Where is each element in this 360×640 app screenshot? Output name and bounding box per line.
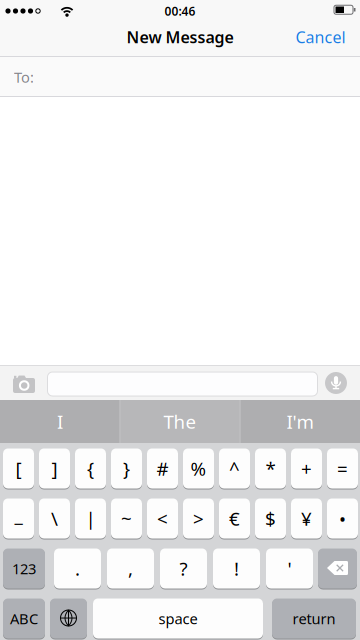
staticText: ABC — [10, 609, 38, 628]
staticText: The — [163, 409, 196, 434]
button[interactable]: _ — [3, 498, 34, 539]
staticText: 123 — [12, 559, 36, 578]
staticText: \ — [51, 506, 58, 531]
button[interactable]: < — [147, 498, 178, 539]
button[interactable]: | — [75, 498, 106, 539]
button[interactable]: return — [272, 598, 356, 639]
button[interactable]: , — [107, 548, 154, 589]
button[interactable]: + — [291, 448, 322, 489]
staticText: * — [265, 456, 275, 481]
button[interactable]: { — [75, 448, 106, 489]
button[interactable]: * — [255, 448, 286, 489]
staticText: . — [75, 556, 80, 581]
staticText: } — [123, 456, 130, 481]
button[interactable]: Delete — [318, 548, 357, 589]
button[interactable]: space — [93, 598, 263, 639]
button[interactable]: I — [5, 400, 115, 443]
staticText: % — [190, 456, 206, 481]
button[interactable]: The — [125, 400, 235, 443]
staticText: + — [301, 456, 312, 481]
staticText: > — [193, 506, 204, 531]
staticText: To: — [14, 67, 34, 87]
staticText: < — [157, 506, 168, 531]
staticText: _ — [14, 502, 22, 527]
button[interactable]: [ — [3, 448, 34, 489]
button[interactable]: $ — [255, 498, 286, 539]
staticText: • — [339, 506, 346, 531]
button[interactable]: 123 — [3, 548, 45, 589]
button[interactable]: Take Photo — [0, 365, 48, 400]
button[interactable]: ABC — [3, 598, 45, 639]
button[interactable]: # — [147, 448, 178, 489]
staticText: I'm — [286, 409, 313, 434]
staticText: ¥ — [301, 506, 312, 531]
button[interactable]: Cancel — [295, 26, 356, 48]
button[interactable]: • — [327, 498, 358, 539]
staticText: = — [337, 456, 348, 481]
staticText: 00:46 — [164, 3, 195, 19]
button[interactable]: To: — [0, 57, 360, 97]
staticText: ^ — [229, 456, 240, 481]
staticText: ! — [234, 556, 239, 581]
button[interactable]: ! — [213, 548, 260, 589]
staticText: [ — [15, 456, 21, 481]
button[interactable]: > — [183, 498, 214, 539]
button[interactable]: ? — [160, 548, 207, 589]
button[interactable]: \ — [39, 498, 70, 539]
button[interactable]: ¥ — [291, 498, 322, 539]
staticText: € — [229, 506, 240, 531]
staticText: | — [85, 506, 95, 531]
staticText: ' — [287, 556, 291, 581]
staticText: space — [158, 609, 197, 628]
staticText: return — [292, 609, 335, 628]
button[interactable]: ~ — [111, 498, 142, 539]
button[interactable]: % — [183, 448, 214, 489]
button[interactable]: € — [219, 498, 250, 539]
button[interactable]: ^ — [219, 448, 250, 489]
staticText: # — [156, 456, 168, 481]
button[interactable]: Message — [47, 372, 317, 396]
staticText: { — [87, 456, 94, 481]
button[interactable]: Record voice message — [325, 372, 347, 394]
button[interactable]: I'm — [245, 400, 355, 443]
staticText: ~ — [121, 506, 132, 531]
button[interactable]: = — [327, 448, 358, 489]
button[interactable]: . — [54, 548, 101, 589]
staticText: ? — [179, 556, 187, 581]
button[interactable]: ' — [266, 548, 313, 589]
staticText: , — [128, 556, 133, 581]
button[interactable]: ] — [39, 448, 70, 489]
staticText: ] — [51, 456, 57, 481]
button[interactable]: Next keyboard — [50, 598, 87, 639]
staticText: New Message — [126, 26, 233, 48]
staticText: $ — [265, 506, 276, 531]
button[interactable]: } — [111, 448, 142, 489]
staticText: I — [57, 409, 63, 434]
staticText: Cancel — [295, 26, 345, 48]
